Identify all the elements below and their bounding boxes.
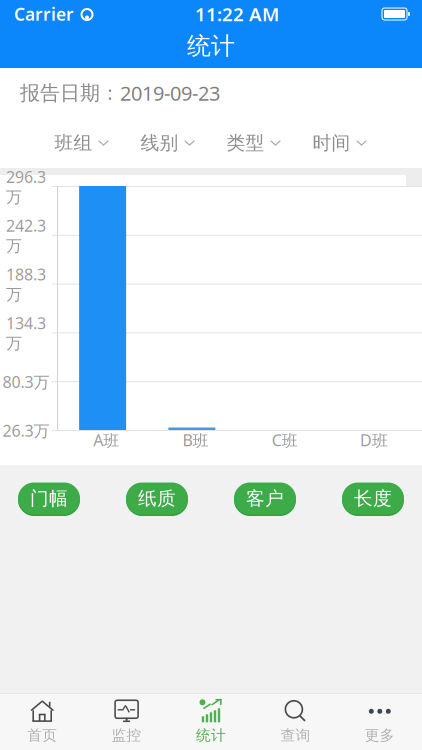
button[interactable]: 纸质 bbox=[126, 483, 188, 517]
staticText: Carrier bbox=[14, 2, 74, 25]
button[interactable]: 门幅 bbox=[18, 483, 80, 517]
staticText: 报告日期： bbox=[20, 81, 120, 105]
staticText: 长度 bbox=[354, 488, 392, 511]
staticText: 2019-09-23 bbox=[120, 80, 220, 106]
button[interactable]: 线别 bbox=[125, 122, 211, 164]
staticText: 查询 bbox=[280, 726, 310, 744]
staticText: 296.3万 bbox=[6, 166, 46, 207]
staticText: 类型 bbox=[226, 131, 264, 154]
staticText: 长度 bbox=[354, 487, 392, 510]
staticText: 门幅 bbox=[30, 487, 68, 510]
staticText: 242.3万 bbox=[6, 215, 46, 256]
staticText: 客户 bbox=[246, 488, 284, 511]
staticText: 时间 bbox=[312, 131, 350, 154]
button[interactable]: 班组 bbox=[39, 122, 125, 164]
staticText: 首页 bbox=[27, 726, 57, 744]
button[interactable]: 首页 bbox=[0, 696, 84, 748]
staticText: 监控 bbox=[112, 726, 142, 744]
staticText: 更多 bbox=[365, 726, 395, 744]
staticText: 客户 bbox=[246, 487, 284, 510]
staticText: 26.3万 bbox=[2, 420, 49, 441]
staticText: B班 bbox=[182, 429, 208, 451]
staticText: 统计 bbox=[196, 726, 226, 744]
button[interactable]: 长度 bbox=[342, 483, 404, 517]
staticText: 11:22 AM bbox=[195, 2, 279, 26]
button[interactable]: 时间 bbox=[297, 122, 383, 164]
staticText: 80.3万 bbox=[2, 371, 49, 392]
button[interactable]: 类型 bbox=[211, 122, 297, 164]
staticText: 纸质 bbox=[138, 488, 176, 511]
staticText: 线别 bbox=[140, 131, 178, 154]
button[interactable]: 监控 bbox=[84, 696, 169, 748]
staticText: C班 bbox=[272, 429, 298, 451]
staticText: 班组 bbox=[54, 131, 92, 154]
staticText: A班 bbox=[93, 429, 119, 451]
button[interactable]: 查询 bbox=[253, 696, 338, 748]
button[interactable]: 客户 bbox=[234, 483, 296, 517]
button[interactable]: 统计 bbox=[169, 696, 253, 748]
staticText: 188.3万 bbox=[6, 264, 46, 304]
button[interactable]: 更多 bbox=[338, 696, 422, 748]
staticText: 门幅 bbox=[30, 488, 68, 511]
staticText: 统计 bbox=[187, 31, 235, 61]
staticText: 纸质 bbox=[138, 487, 176, 510]
staticText: D班 bbox=[360, 429, 388, 451]
staticText: 134.3万 bbox=[6, 312, 46, 353]
